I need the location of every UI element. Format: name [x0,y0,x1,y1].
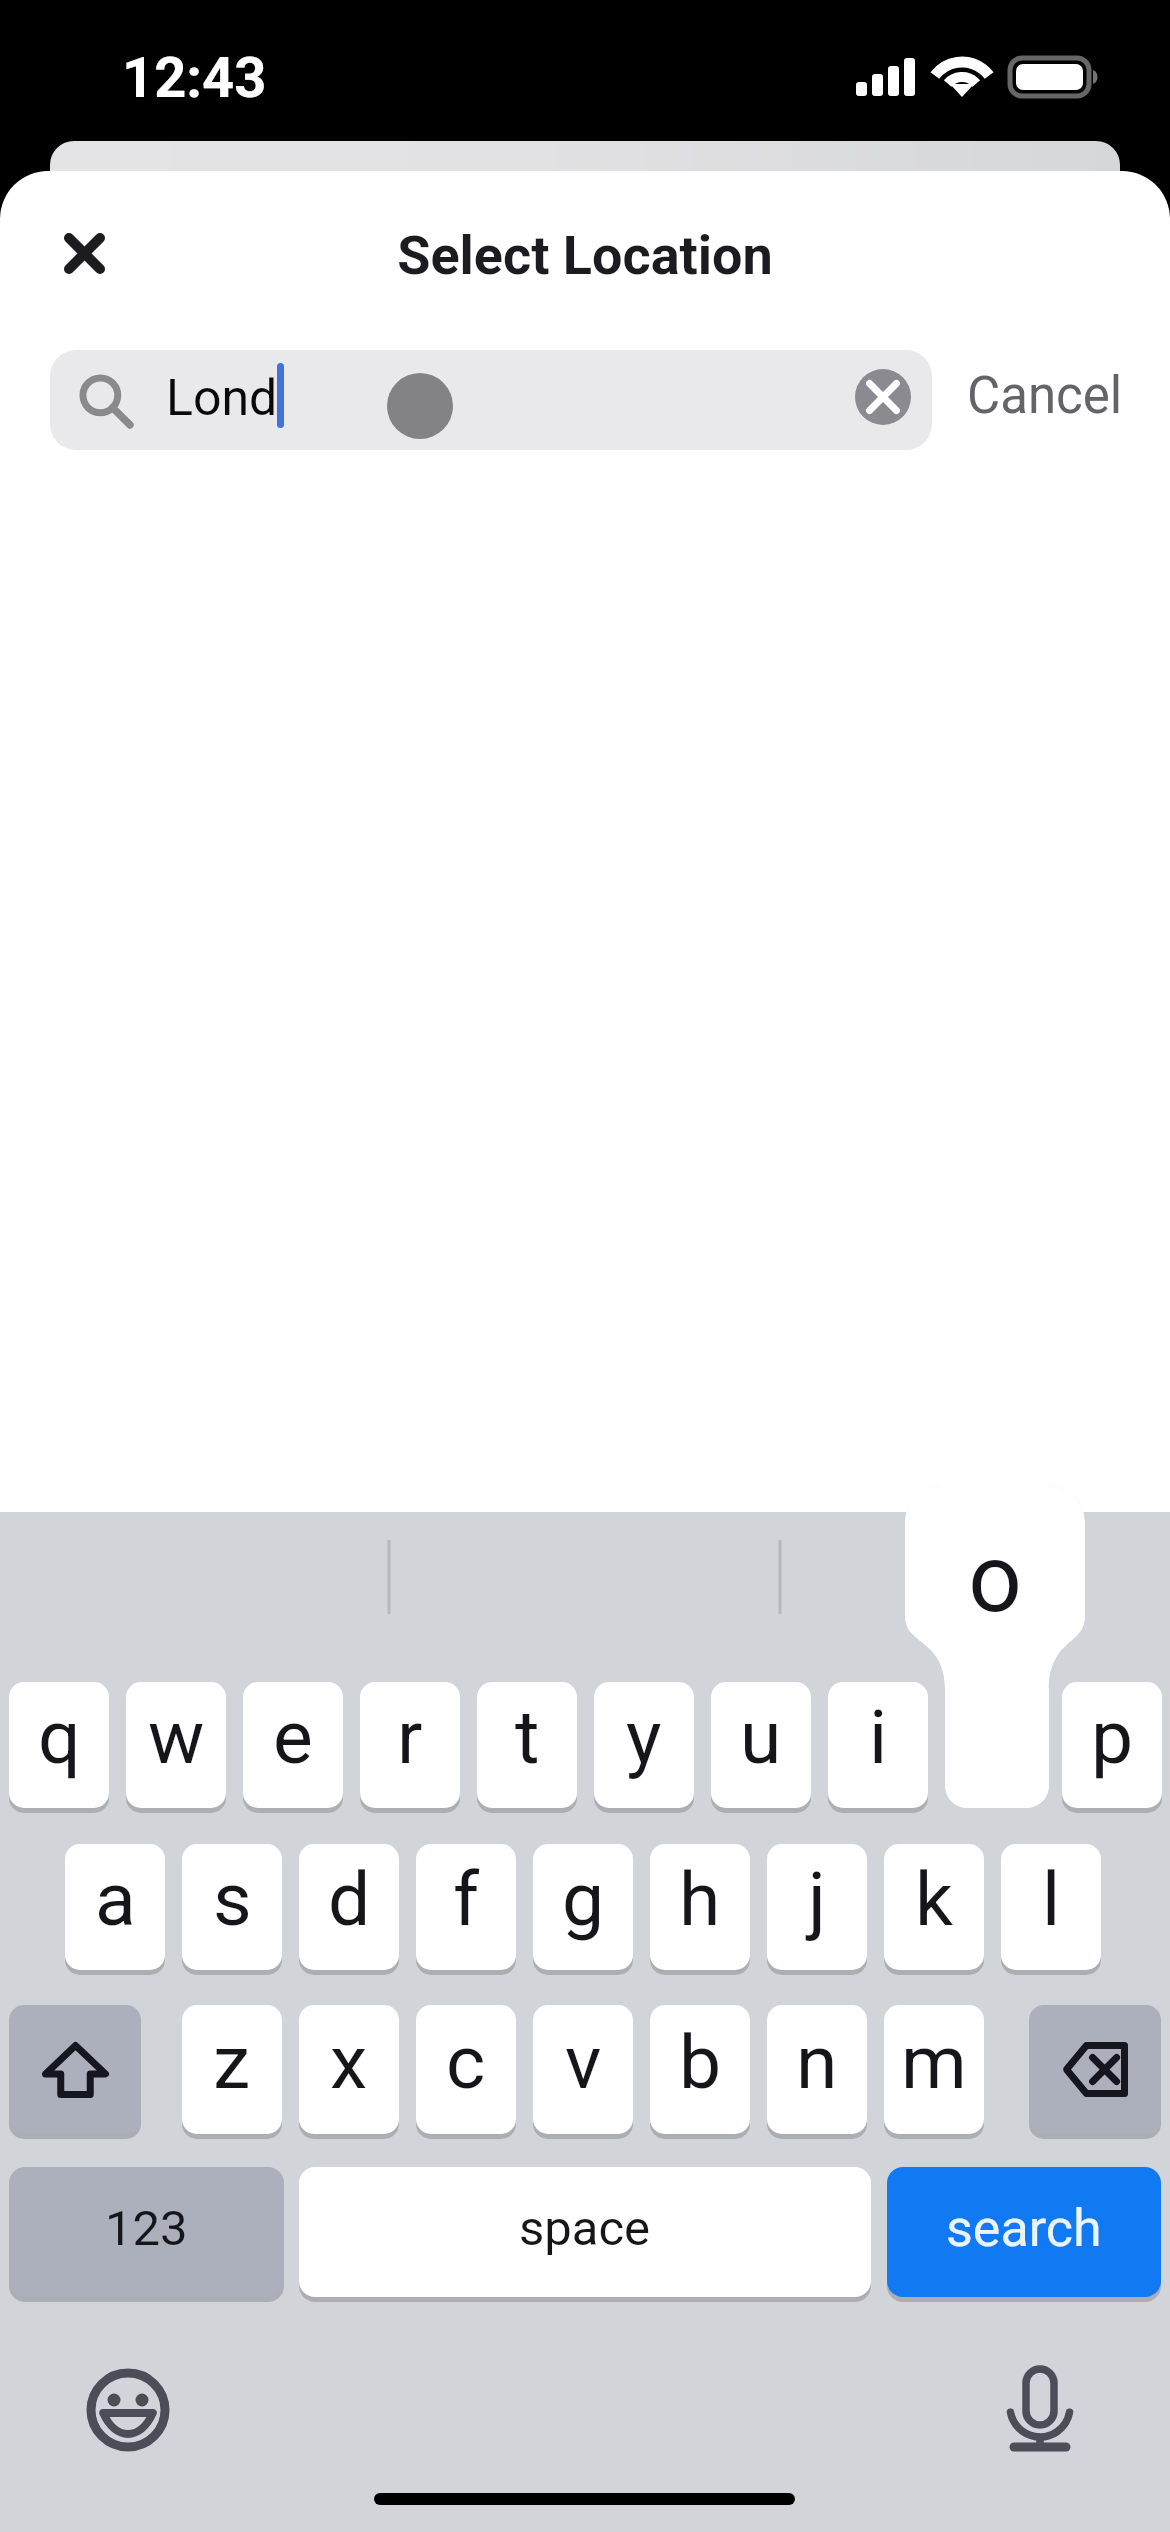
staticText: q [38,1693,81,1781]
staticText: p [1091,1693,1134,1781]
staticText: z [213,2018,251,2106]
button[interactable]: Voice input [990,2360,1090,2460]
staticText: k [915,1855,954,1943]
staticText: x [330,2018,368,2106]
staticText: l [1042,1855,1061,1943]
button[interactable]: z [182,2005,282,2134]
staticText: u [740,1693,782,1781]
button[interactable]: y [594,1682,694,1808]
button[interactable]: b [650,2005,750,2134]
button[interactable]: Emoji keyboard [78,2360,178,2460]
staticText: m [901,2018,967,2106]
button[interactable]: l [1001,1844,1101,1970]
button[interactable]: e [243,1682,343,1808]
button[interactable]: v [533,2005,633,2134]
button[interactable]: r [360,1682,460,1808]
button[interactable]: c [416,2005,516,2134]
staticText: y [626,1693,662,1781]
button[interactable]: Lond [50,350,932,450]
button[interactable]: j [767,1844,867,1970]
staticText: w [148,1693,205,1781]
button[interactable]: f [416,1844,516,1970]
staticText: e [273,1693,313,1781]
button[interactable]: n [767,2005,867,2134]
button[interactable]: p [1062,1682,1162,1808]
staticText: search [946,2198,1102,2259]
button[interactable]: i [828,1682,928,1808]
button[interactable]: Backspace [1029,2005,1161,2134]
staticText: h [679,1855,721,1943]
staticText: f [453,1855,480,1943]
staticText: t [515,1693,540,1781]
button[interactable]: Shift [9,2005,141,2134]
staticText: r [397,1693,423,1781]
staticText: 123 [105,2200,188,2257]
button[interactable]: search [887,2167,1161,2297]
staticText: j [808,1855,826,1943]
staticText: s [213,1855,252,1943]
button[interactable]: space [299,2167,871,2297]
staticText: d [328,1855,371,1943]
button[interactable]: 123 [9,2167,284,2297]
button[interactable]: Close [39,208,129,298]
staticText: i [869,1693,888,1781]
staticText: o [905,1524,1085,1634]
staticText: Lond [166,369,278,428]
staticText: v [565,2018,602,2106]
button[interactable]: a [65,1844,165,1970]
staticText: g [562,1855,605,1943]
button[interactable]: t [477,1682,577,1808]
button[interactable]: k [884,1844,984,1970]
button[interactable]: g [533,1844,633,1970]
staticText: n [796,2018,838,2106]
button[interactable]: w [126,1682,226,1808]
staticText: a [95,1855,136,1943]
button[interactable]: Cancel [951,350,1139,442]
staticText: c [446,2018,486,2106]
button[interactable]: m [884,2005,984,2134]
staticText: Cancel [967,366,1123,426]
button[interactable]: d [299,1844,399,1970]
button[interactable]: s [182,1844,282,1970]
staticText: b [679,2018,722,2106]
staticText: Select Location [0,224,1170,287]
button[interactable]: q [9,1682,109,1808]
button[interactable]: x [299,2005,399,2134]
staticText: 12:43 [122,45,267,111]
button[interactable]: u [711,1682,811,1808]
staticText: space [519,2200,651,2257]
button[interactable]: h [650,1844,750,1970]
button[interactable]: Clear text [855,369,911,425]
